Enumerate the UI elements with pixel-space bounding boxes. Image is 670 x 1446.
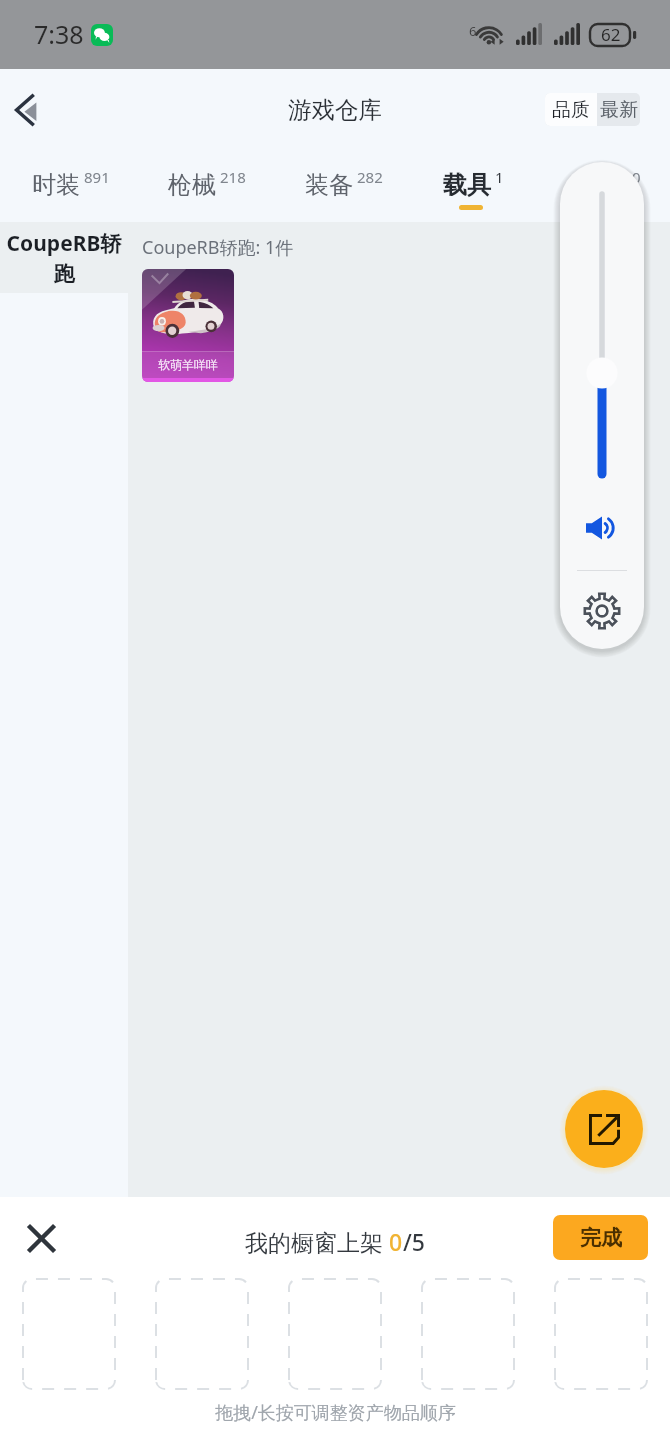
button[interactable]: 其他	[580, 150, 641, 222]
button[interactable]	[555, 1279, 647, 1389]
staticText: 游戏仓库	[288, 95, 382, 125]
staticText: 891	[84, 167, 110, 187]
button[interactable]	[289, 1279, 381, 1389]
staticText: 其他	[580, 170, 628, 200]
button[interactable]: 软萌羊咩咩	[142, 269, 234, 382]
staticText: 218	[220, 167, 246, 187]
staticText: 0	[632, 167, 641, 187]
button[interactable]: Close	[15, 1212, 67, 1264]
button[interactable]	[23, 1279, 115, 1389]
staticText: CoupeRB轿跑	[4, 229, 124, 287]
staticText: 7:38	[34, 17, 84, 51]
staticText: 完成	[580, 1225, 622, 1251]
staticText: 我的橱窗上架	[245, 1226, 389, 1257]
button[interactable]: Volume	[579, 505, 625, 551]
button[interactable]: 枪械	[168, 150, 246, 222]
button[interactable]: Share	[565, 1090, 643, 1168]
button[interactable]: Back	[0, 81, 56, 139]
button[interactable]	[422, 1279, 514, 1389]
button[interactable]: Settings	[579, 588, 625, 634]
staticText: 软萌羊咩咩	[158, 357, 218, 372]
button[interactable]: CoupeRB轿跑	[0, 222, 128, 293]
staticText: 拖拽/长按可调整资产物品顺序	[215, 1400, 456, 1425]
staticText: 1	[495, 167, 504, 187]
button[interactable]	[156, 1279, 248, 1389]
staticText: 载具	[443, 170, 491, 200]
staticText: 时装	[32, 170, 80, 200]
staticText: 枪械	[168, 170, 216, 200]
staticText: 6	[469, 22, 477, 40]
staticText: /5	[403, 1226, 426, 1257]
button[interactable]: 完成	[553, 1215, 648, 1260]
staticText: 282	[357, 167, 383, 187]
staticText: 62	[601, 23, 621, 46]
button[interactable]: 装备	[305, 150, 383, 222]
button[interactable]: Volume slider	[560, 162, 644, 502]
button[interactable]: 载具	[443, 150, 504, 222]
button[interactable]: 最新	[597, 93, 640, 126]
button[interactable]: 品质	[545, 93, 597, 126]
staticText: CoupeRB轿跑: 1件	[142, 235, 294, 260]
staticText: 装备	[305, 170, 353, 200]
staticText: 品质	[552, 98, 590, 122]
staticText: 最新	[600, 98, 638, 122]
button[interactable]: 时装	[32, 150, 110, 222]
staticText: 0	[389, 1226, 403, 1257]
